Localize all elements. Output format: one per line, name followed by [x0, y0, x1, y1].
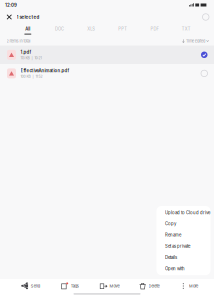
button[interactable]: Send [10, 279, 50, 293]
button[interactable]: Set as private [156, 241, 210, 252]
staticText: Upload to Cloud drive [165, 210, 209, 215]
button[interactable]: Open with [156, 263, 210, 274]
staticText: 12:09 [5, 2, 17, 8]
button[interactable]: PPT [107, 24, 139, 37]
button[interactable]: Delete [129, 279, 169, 293]
staticText: More [189, 284, 198, 288]
staticText: PPT [118, 26, 127, 31]
staticText: Copy [165, 221, 176, 226]
staticText: 1.pdf [20, 49, 31, 55]
staticText: 1 selected [16, 14, 39, 20]
button[interactable]: EffectiveAnimation.pdf [0, 64, 214, 83]
staticText: 2 items in total [6, 39, 30, 43]
staticText: 113 KB | 10:21 [20, 56, 41, 60]
button[interactable]: Upload to Cloud drive [156, 207, 210, 218]
staticText: 100 KB | 11:52 [20, 74, 42, 79]
button[interactable]: Tags [50, 279, 90, 293]
staticText: Time Edited [186, 39, 205, 43]
staticText: TXT [182, 26, 191, 31]
staticText: Tags [71, 284, 79, 288]
staticText: XLS [87, 26, 95, 31]
button[interactable]: Rename [156, 229, 210, 241]
staticText: DOC [55, 26, 64, 31]
staticText: Rename [165, 232, 181, 238]
button[interactable]: More [169, 279, 208, 293]
button[interactable]: Select all [197, 10, 214, 24]
staticText: Send [31, 284, 40, 288]
staticText: Delete [148, 284, 159, 288]
button[interactable]: TXT [170, 24, 202, 37]
staticText: Set as private [165, 244, 190, 249]
button[interactable]: Exit selection mode [0, 10, 45, 23]
staticText: Open with [165, 266, 185, 271]
button[interactable]: 1.pdf [0, 45, 214, 64]
staticText: Details [165, 255, 177, 260]
button[interactable]: DOC [44, 24, 75, 37]
button[interactable]: PDF [139, 24, 170, 37]
button[interactable]: XLS [75, 24, 107, 37]
button[interactable]: Details [156, 252, 210, 263]
button[interactable]: Copy [156, 218, 210, 229]
staticText: All [25, 26, 30, 31]
button[interactable]: Time Edited [182, 39, 209, 43]
staticText: PDF [150, 26, 158, 31]
button[interactable]: Move [90, 279, 129, 293]
staticText: EffectiveAnimation.pdf [20, 68, 69, 73]
button[interactable]: All [12, 24, 44, 37]
staticText: Move [109, 284, 119, 288]
